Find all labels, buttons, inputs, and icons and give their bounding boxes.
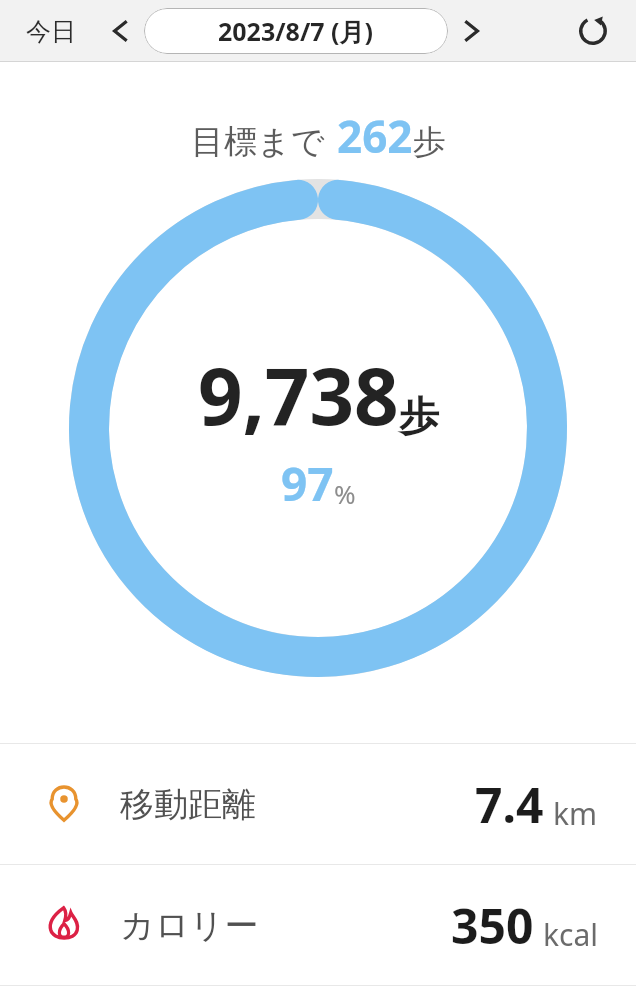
staticText: 今日 xyxy=(26,16,76,47)
staticText: 歩 xyxy=(399,391,439,441)
staticText: 7.4 xyxy=(475,772,544,837)
staticText: kcal xyxy=(543,914,598,955)
staticText: 97 xyxy=(281,452,334,515)
button[interactable]: 2023/8/7 (月) xyxy=(144,8,448,54)
button[interactable]: Refresh xyxy=(568,6,618,56)
staticText: 歩 xyxy=(413,121,446,163)
staticText: 350 xyxy=(451,893,534,958)
button[interactable]: Previous day xyxy=(98,9,142,53)
staticText: 9,738 xyxy=(198,342,399,448)
staticText: 2023/8/7 (月) xyxy=(218,14,374,48)
staticText: % xyxy=(334,476,356,511)
other: Distance xyxy=(42,782,86,826)
staticText: 262 xyxy=(337,106,413,166)
other: Calories xyxy=(42,903,86,947)
button[interactable]: 今日 xyxy=(18,8,84,55)
staticText: 移動距離 xyxy=(120,783,256,826)
staticText: 目標まで xyxy=(191,121,325,163)
button[interactable]: Distance xyxy=(0,744,636,864)
button[interactable]: Next day xyxy=(450,9,494,53)
staticText: カロリー xyxy=(120,904,259,947)
button[interactable]: Calories xyxy=(0,865,636,985)
staticText: km xyxy=(553,793,598,834)
